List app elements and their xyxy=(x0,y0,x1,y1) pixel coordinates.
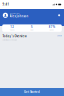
button[interactable]: Notifications xyxy=(57,13,61,18)
staticText: Done xyxy=(50,29,54,31)
staticText: Get Started xyxy=(24,90,40,94)
staticText: Good morning xyxy=(9,13,19,14)
staticText: Tasks xyxy=(10,29,15,31)
staticText: 3 meetings scheduled xyxy=(2,39,17,41)
staticText: Today's Overview xyxy=(2,34,26,38)
staticText: 12 xyxy=(10,25,14,29)
staticText: Alex Johnson xyxy=(9,14,28,18)
button[interactable]: See all xyxy=(57,34,62,37)
staticText: 5 xyxy=(31,25,33,29)
staticText: Due xyxy=(30,29,33,31)
staticText: 9:41 xyxy=(3,3,10,6)
staticText: See all xyxy=(57,35,61,37)
staticText: 87% xyxy=(49,25,55,29)
button[interactable]: Get Started xyxy=(0,88,64,96)
